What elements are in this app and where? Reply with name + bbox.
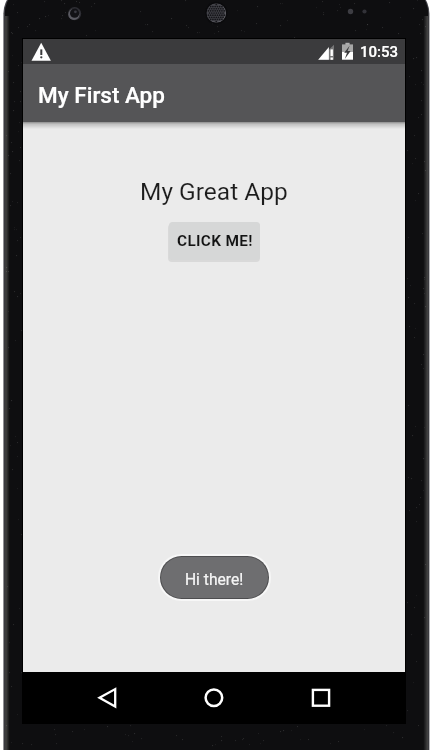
staticText: My Great App <box>140 177 288 206</box>
button[interactable]: My First App <box>23 64 405 122</box>
button[interactable]: Hi there! <box>161 557 268 598</box>
staticText: Hi there! <box>185 571 244 589</box>
staticText: My First App <box>38 82 165 108</box>
button[interactable]: Recents <box>299 672 341 723</box>
staticText: 10:53 <box>360 43 399 61</box>
button[interactable]: CLICK ME! <box>169 222 260 260</box>
staticText: CLICK ME! <box>177 232 253 250</box>
button[interactable]: Back <box>86 672 128 723</box>
button[interactable]: Home <box>192 672 234 723</box>
